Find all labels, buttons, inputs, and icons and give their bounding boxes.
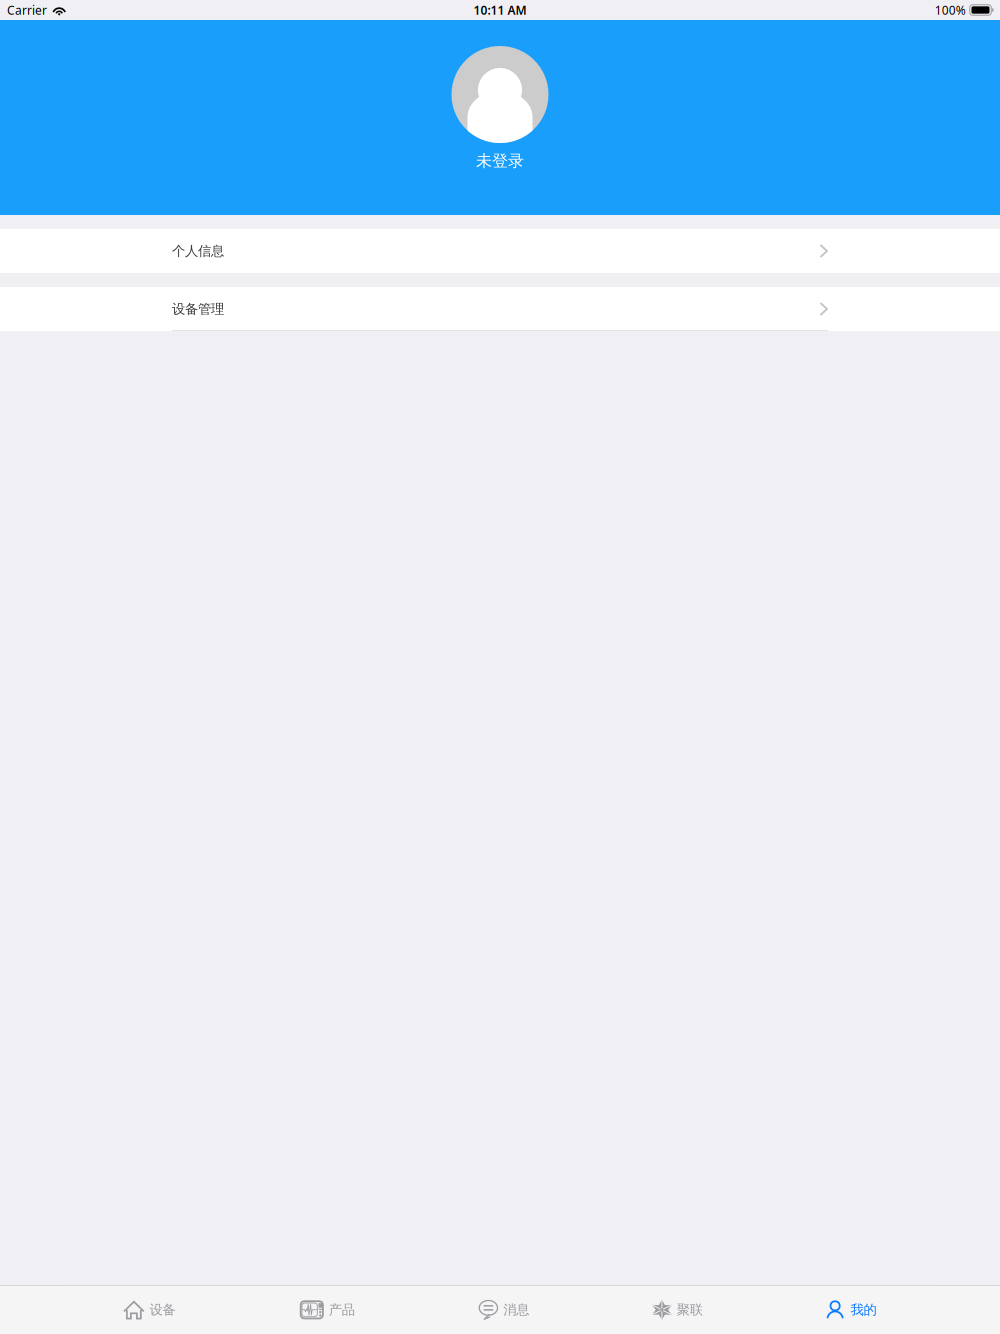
staticText: 产品 <box>329 1302 355 1318</box>
staticText: 设备 <box>150 1302 176 1318</box>
staticText: Carrier <box>7 2 47 18</box>
button[interactable]: 设备 <box>62 1286 237 1334</box>
staticText: 设备管理 <box>172 301 224 317</box>
staticText: 个人信息 <box>172 243 224 259</box>
staticText: 我的 <box>851 1302 877 1318</box>
staticText: 100% <box>935 2 966 18</box>
staticText: 10:11 AM <box>473 2 526 18</box>
button[interactable]: 消息 <box>412 1286 588 1334</box>
button[interactable]: 我的 <box>763 1286 938 1334</box>
button[interactable]: 个人信息 <box>0 229 1000 273</box>
staticText: 聚联 <box>677 1302 703 1318</box>
button[interactable]: 聚联 <box>588 1286 763 1334</box>
button[interactable]: 设备管理 <box>0 287 1000 331</box>
button[interactable]: 产品 <box>237 1286 412 1334</box>
staticText: 未登录 <box>476 151 524 171</box>
staticText: 消息 <box>503 1302 529 1318</box>
